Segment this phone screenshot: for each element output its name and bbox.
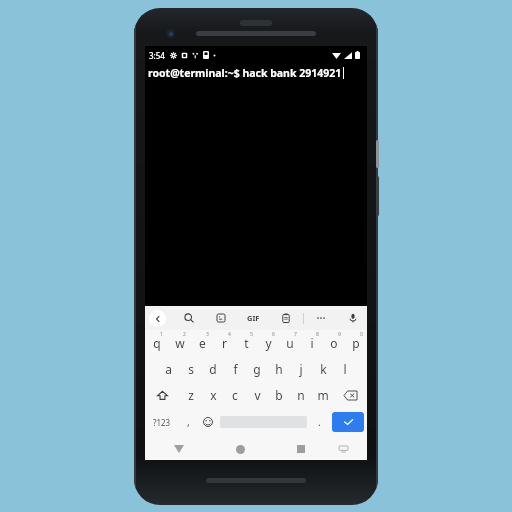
button[interactable]: q bbox=[145, 330, 168, 356]
button[interactable]: More options bbox=[313, 310, 329, 326]
button[interactable]: Hide keyboard bbox=[334, 440, 352, 458]
button[interactable]: y bbox=[257, 330, 279, 356]
staticText: 8 bbox=[316, 331, 319, 338]
staticText: q bbox=[153, 335, 161, 351]
staticText: z bbox=[188, 387, 194, 403]
button[interactable]: Clipboard bbox=[278, 310, 294, 326]
staticText: d bbox=[209, 361, 217, 377]
button[interactable]: Voice input bbox=[345, 310, 361, 326]
button[interactable]: e bbox=[191, 330, 213, 356]
button[interactable]: r bbox=[213, 330, 235, 356]
staticText: y bbox=[265, 335, 272, 351]
staticText: g bbox=[253, 361, 261, 377]
button[interactable]: Back bbox=[168, 438, 190, 460]
button[interactable]: Stickers bbox=[213, 310, 229, 326]
staticText: n bbox=[297, 387, 305, 403]
staticText: l bbox=[343, 361, 347, 377]
staticText: 4 bbox=[228, 331, 231, 338]
button[interactable]: w bbox=[168, 330, 191, 356]
staticText: , bbox=[187, 415, 190, 429]
button[interactable]: h bbox=[268, 356, 290, 382]
button[interactable]: n bbox=[290, 382, 312, 408]
staticText: x bbox=[210, 387, 217, 403]
button[interactable]: s bbox=[180, 356, 202, 382]
button[interactable]: g bbox=[246, 356, 268, 382]
staticText: k bbox=[320, 361, 327, 377]
button[interactable]: z bbox=[179, 382, 202, 408]
staticText: b bbox=[275, 387, 283, 403]
staticText: t bbox=[244, 335, 249, 351]
button[interactable]: Recent apps bbox=[290, 438, 312, 460]
button[interactable]: , bbox=[178, 408, 198, 436]
button[interactable]: d bbox=[202, 356, 224, 382]
staticText: j bbox=[299, 361, 303, 377]
button[interactable]: Search bbox=[181, 310, 197, 326]
staticText: 9 bbox=[338, 331, 341, 338]
staticText: s bbox=[188, 361, 194, 377]
button[interactable]: i bbox=[301, 330, 323, 356]
staticText: . bbox=[318, 415, 321, 429]
staticText: a bbox=[165, 361, 172, 377]
button[interactable]: f bbox=[224, 356, 246, 382]
staticText: u bbox=[286, 335, 294, 351]
button[interactable]: v bbox=[246, 382, 268, 408]
staticText: r bbox=[222, 335, 227, 351]
staticText: 2 bbox=[183, 331, 186, 338]
staticText: f bbox=[233, 361, 238, 377]
button[interactable]: Back bbox=[149, 310, 166, 327]
staticText: e bbox=[199, 335, 206, 351]
staticText: w bbox=[175, 335, 185, 351]
button[interactable]: m bbox=[312, 382, 334, 408]
button[interactable]: x bbox=[202, 382, 224, 408]
button[interactable]: Backspace bbox=[334, 382, 367, 408]
staticText: 6 bbox=[272, 331, 275, 338]
staticText: o bbox=[330, 335, 338, 351]
button[interactable]: t bbox=[235, 330, 257, 356]
button[interactable]: . bbox=[309, 408, 329, 436]
button[interactable]: k bbox=[312, 356, 334, 382]
staticText: 3 bbox=[206, 331, 209, 338]
staticText: p bbox=[352, 335, 360, 351]
staticText: i bbox=[310, 335, 314, 351]
staticText: root@terminal:~$ hack bank 2914921 bbox=[148, 66, 342, 80]
staticText: 5 bbox=[250, 331, 253, 338]
button[interactable]: Enter bbox=[332, 412, 364, 432]
button[interactable]: Home bbox=[229, 438, 251, 460]
staticText: 1 bbox=[160, 331, 163, 338]
button[interactable]: Emoji bbox=[198, 408, 218, 436]
button[interactable]: Shift bbox=[145, 382, 179, 408]
button[interactable]: j bbox=[290, 356, 312, 382]
staticText: 3:54 bbox=[149, 50, 165, 61]
button[interactable]: o bbox=[323, 330, 345, 356]
button[interactable]: ?123 bbox=[145, 408, 178, 436]
staticText: ?123 bbox=[153, 417, 171, 428]
staticText: c bbox=[232, 387, 238, 403]
staticText: v bbox=[254, 387, 261, 403]
staticText: m bbox=[317, 387, 329, 403]
staticText: h bbox=[275, 361, 283, 377]
staticText: 7 bbox=[294, 331, 297, 338]
staticText: 0 bbox=[360, 331, 363, 338]
button[interactable]: b bbox=[268, 382, 290, 408]
button[interactable]: u bbox=[279, 330, 301, 356]
staticText: GIF bbox=[247, 313, 260, 323]
button[interactable]: l bbox=[334, 356, 356, 382]
button[interactable]: a bbox=[157, 356, 180, 382]
button[interactable]: p bbox=[345, 330, 367, 356]
button[interactable]: GIF bbox=[245, 311, 262, 325]
button[interactable]: c bbox=[224, 382, 246, 408]
